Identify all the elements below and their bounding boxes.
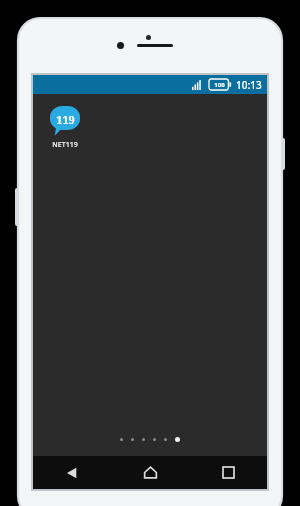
button[interactable]: Home bbox=[111, 456, 189, 489]
button[interactable]: Recent apps bbox=[189, 456, 267, 489]
button[interactable]: NET119 app bbox=[39, 104, 91, 152]
button[interactable]: Back bbox=[33, 456, 111, 489]
staticText: NET119 bbox=[52, 140, 78, 150]
other: Signal strength bbox=[192, 80, 203, 90]
other: NET119 app bbox=[50, 106, 80, 136]
staticText: 100 bbox=[214, 81, 225, 89]
other: Battery 100 percent bbox=[209, 79, 231, 90]
staticText: 10:13 bbox=[236, 78, 262, 92]
staticText: 119 bbox=[56, 112, 75, 127]
